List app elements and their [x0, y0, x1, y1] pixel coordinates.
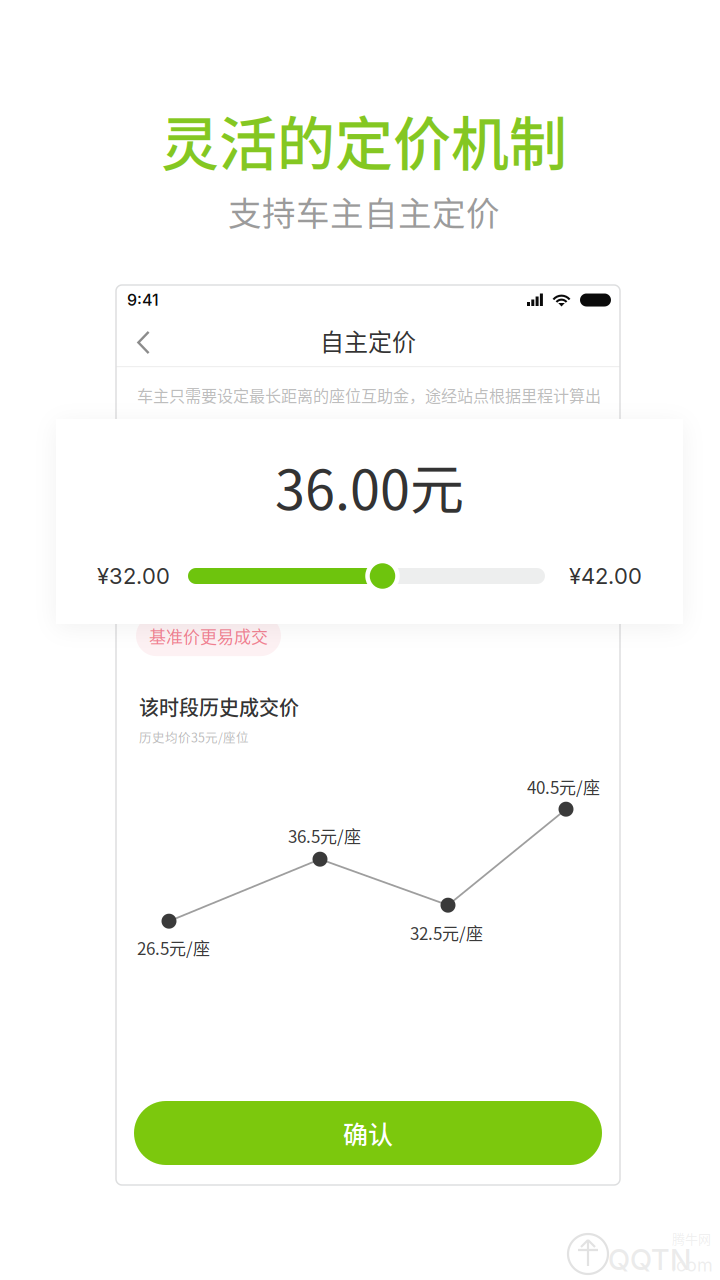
staticText: 支持车主自主定价	[228, 187, 500, 235]
staticText: QQTN	[608, 1242, 691, 1277]
staticText: 36.5元/座	[288, 823, 361, 848]
staticText: 基准价更易成交	[149, 623, 268, 648]
staticText: 车主只需要设定最长距离的座位互助金，途经站点根据里程计算出	[137, 383, 601, 406]
button[interactable]: Back	[116, 315, 166, 366]
button[interactable]: 确认	[134, 1101, 602, 1165]
staticText: 灵活的定价机制	[161, 98, 567, 182]
staticText: 26.5元/座	[137, 935, 210, 960]
staticText: 该时段历史成交价	[139, 692, 299, 721]
staticText: .com	[671, 1254, 713, 1276]
staticText: 确认	[343, 1115, 393, 1151]
staticText: 自主定价	[320, 323, 416, 358]
staticText: 36.00元	[275, 447, 464, 525]
staticText: 历史均价35元/座位	[139, 728, 249, 746]
staticText: 40.5元/座	[527, 774, 600, 799]
staticText: ¥32.00	[97, 563, 170, 589]
staticText: 9:41	[127, 290, 159, 310]
staticText: ¥42.00	[569, 563, 642, 589]
staticText: 32.5元/座	[410, 920, 483, 945]
staticText: 腾牛网	[672, 1229, 711, 1248]
